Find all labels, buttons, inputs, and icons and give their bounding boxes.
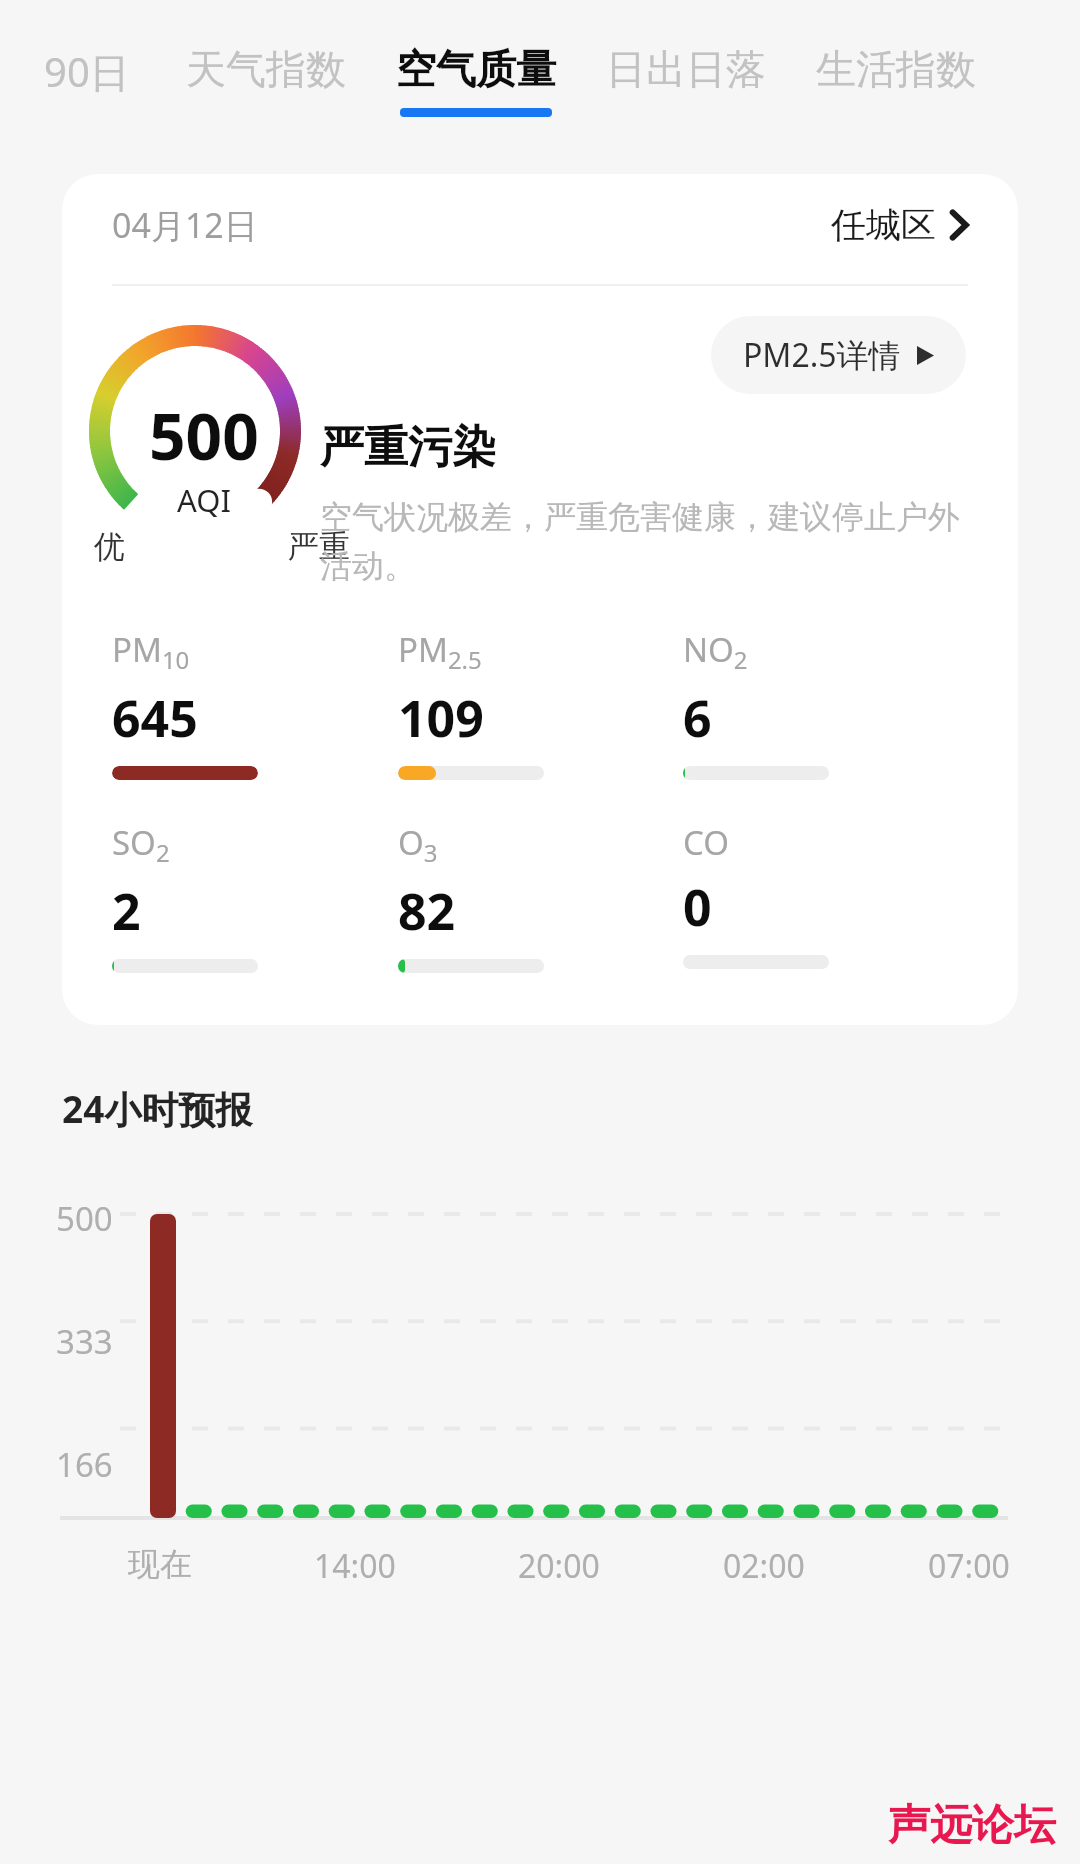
button[interactable]: 任城区 — [831, 203, 968, 247]
button[interactable]: 04月12日 — [62, 174, 1018, 1025]
staticText: 严重 — [288, 527, 350, 566]
button[interactable]: CO — [683, 820, 968, 969]
button[interactable]: PM10 — [112, 627, 398, 780]
staticText: PM2.5详情 — [743, 333, 901, 377]
staticText: 空气状况极差，严重危害健康，建议停止户外活动。 — [320, 497, 966, 587]
staticText: NO2 — [683, 627, 748, 676]
staticText: 日出日落 — [606, 44, 766, 94]
button[interactable]: 日出日落 — [606, 44, 766, 108]
staticText: 天气指数 — [186, 44, 346, 94]
staticText: SO2 — [112, 820, 170, 869]
button[interactable]: O3 — [398, 820, 683, 973]
button[interactable]: PM2.5详情 — [711, 316, 966, 394]
staticText: 空气质量 — [396, 44, 556, 94]
staticText: 02:00 — [723, 1544, 805, 1588]
staticText: 2 — [112, 877, 141, 945]
button[interactable]: 天气指数 — [186, 44, 346, 108]
staticText: 04月12日 — [112, 202, 258, 248]
staticText: AQI — [177, 479, 231, 521]
staticText: 166 — [56, 1442, 113, 1487]
button[interactable]: SO2 — [112, 820, 398, 973]
staticText: 严重污染 — [320, 420, 496, 475]
staticText: PM2.5 — [398, 627, 482, 676]
button[interactable]: 90日 — [44, 44, 130, 113]
staticText: 20:00 — [518, 1544, 600, 1588]
staticText: 645 — [112, 684, 198, 752]
staticText: 优 — [94, 527, 125, 566]
staticText: 任城区 — [831, 203, 936, 247]
staticText: 生活指数 — [816, 44, 976, 94]
staticText: 24小时预报 — [62, 1083, 253, 1134]
other: 切换城区 — [950, 210, 968, 240]
staticText: 14:00 — [314, 1544, 396, 1588]
button[interactable]: PM2.5 — [398, 627, 683, 780]
staticText: 109 — [398, 684, 484, 752]
staticText: O3 — [398, 820, 438, 869]
staticText: PM10 — [112, 627, 190, 676]
button[interactable]: NO2 — [683, 627, 968, 780]
staticText: 07:00 — [928, 1544, 1010, 1588]
staticText: 333 — [56, 1319, 113, 1364]
staticText: 现在 — [128, 1544, 192, 1584]
staticText: 500 — [149, 392, 259, 479]
staticText: 6 — [683, 684, 712, 752]
staticText: 0 — [683, 873, 712, 941]
staticText: 500 — [56, 1196, 113, 1241]
button[interactable]: 生活指数 — [816, 44, 976, 108]
staticText: 90日 — [44, 44, 130, 99]
button[interactable]: 空气质量 — [396, 44, 556, 117]
staticText: 声远论坛 — [888, 1799, 1056, 1852]
staticText: 82 — [398, 877, 456, 945]
staticText: CO — [683, 820, 729, 865]
